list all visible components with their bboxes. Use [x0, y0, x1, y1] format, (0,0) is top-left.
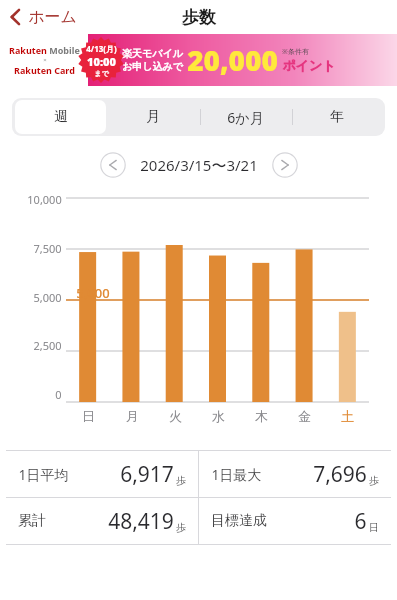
staticText: Mobile — [49, 44, 80, 56]
staticText: 月 — [146, 108, 160, 126]
staticText: 年 — [330, 108, 344, 126]
staticText: 20,000 — [187, 41, 278, 79]
staticText: お申し込みで — [122, 60, 183, 73]
button[interactable]: 週 — [15, 100, 106, 134]
staticText: 48,419 — [108, 507, 174, 536]
staticText: 楽天モバイル — [122, 47, 183, 60]
staticText: ポイント — [282, 57, 336, 73]
staticText: 歩 — [176, 474, 186, 487]
staticText: 5,000 — [33, 290, 62, 305]
staticText: 月 — [126, 408, 139, 424]
staticText: 6か月 — [227, 108, 264, 127]
button[interactable]: 目標達成 — [199, 498, 391, 544]
button[interactable]: 次の週 — [272, 152, 298, 178]
staticText: 2,500 — [33, 338, 62, 353]
staticText: 7,696 — [313, 460, 367, 489]
staticText: 金 — [298, 408, 311, 424]
staticText: Rakuten — [9, 44, 47, 56]
staticText: 目標達成 — [211, 512, 267, 530]
staticText: 日 — [82, 408, 95, 424]
staticText: 10,000 — [27, 192, 62, 207]
staticText: 6,917 — [120, 460, 174, 489]
staticText: 7,500 — [33, 241, 62, 256]
staticText: 累計 — [18, 512, 46, 530]
staticText: ホーム — [28, 7, 77, 27]
button[interactable]: 6か月 — [200, 100, 290, 134]
staticText: 1日最大 — [211, 465, 262, 484]
staticText: 2026/3/15〜3/21 — [140, 155, 258, 175]
button[interactable]: 累計 — [6, 498, 198, 544]
staticText: 土 — [341, 408, 354, 424]
staticText: 歩 — [369, 474, 379, 487]
staticText: 火 — [169, 408, 182, 424]
staticText: × — [43, 56, 47, 64]
button[interactable]: 前の週 — [100, 152, 126, 178]
staticText: 10:00 — [87, 54, 116, 69]
staticText: Rakuten — [14, 64, 52, 76]
button[interactable]: 1日最大 — [199, 451, 391, 497]
button[interactable]: 月 — [108, 100, 198, 134]
staticText: 水 — [212, 408, 225, 424]
staticText: 日 — [369, 521, 379, 534]
staticText: 週 — [54, 108, 68, 126]
button[interactable]: 1日平均 — [6, 451, 198, 497]
staticText: 6 — [354, 507, 367, 536]
staticText: 1日平均 — [18, 465, 69, 484]
staticText: 歩 — [176, 521, 186, 534]
staticText: 5,000 — [76, 284, 110, 302]
button[interactable]: 年 — [292, 100, 382, 134]
staticText: 歩数 — [182, 7, 216, 28]
staticText: 木 — [255, 408, 268, 424]
button[interactable]: ホーム — [0, 3, 85, 31]
button[interactable]: 広告 楽天モバイル — [0, 34, 397, 86]
staticText: Card — [54, 64, 75, 76]
staticText: ※条件有 — [282, 47, 309, 57]
staticText: 4/13(月) — [86, 43, 117, 54]
staticText: 0 — [55, 387, 62, 402]
staticText: まで — [94, 69, 109, 78]
